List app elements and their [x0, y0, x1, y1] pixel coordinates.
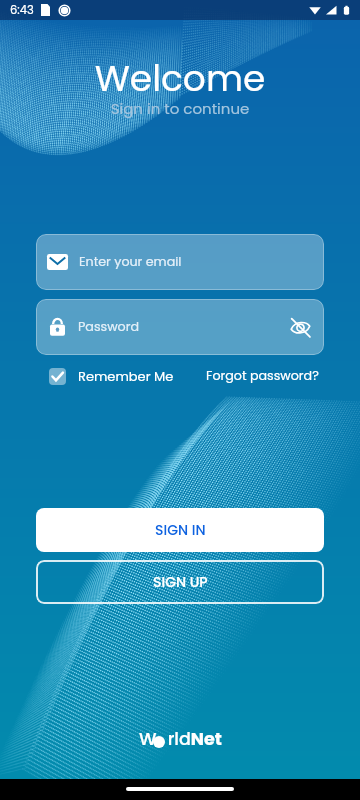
- button[interactable]: Remember Me: [49, 367, 174, 385]
- button[interactable]: Password: [36, 299, 324, 355]
- button[interactable]: Show password: [287, 314, 313, 340]
- staticText: Sign in to continue: [0, 98, 360, 119]
- staticText: Forgot password?: [206, 367, 319, 385]
- staticText: SIGN UP: [153, 572, 208, 592]
- button[interactable]: SIGN UP: [36, 560, 324, 604]
- button[interactable]: Enter your email: [36, 234, 324, 290]
- button[interactable]: Forgot password?: [206, 367, 319, 385]
- staticText: 6:43: [10, 2, 34, 18]
- button[interactable]: SIGN IN: [36, 508, 324, 552]
- staticText: Remember Me: [78, 367, 174, 385]
- staticText: WorldNet: [139, 727, 222, 752]
- staticText: SIGN IN: [155, 520, 206, 540]
- staticText: Enter your email: [79, 253, 182, 271]
- staticText: Welcome: [0, 53, 360, 103]
- staticText: Password: [78, 318, 140, 336]
